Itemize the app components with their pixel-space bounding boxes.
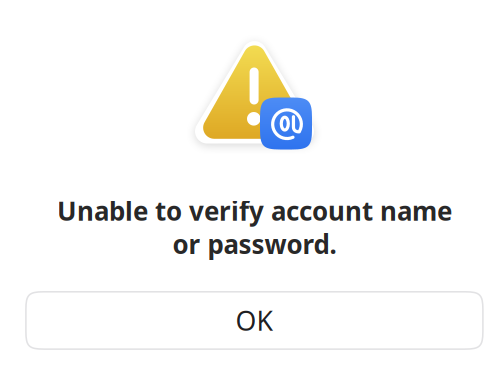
staticText: OK <box>235 302 273 339</box>
staticText: Unable to verify account name <box>57 193 452 228</box>
staticText: or password. <box>172 226 336 261</box>
button[interactable]: OK <box>26 292 483 349</box>
